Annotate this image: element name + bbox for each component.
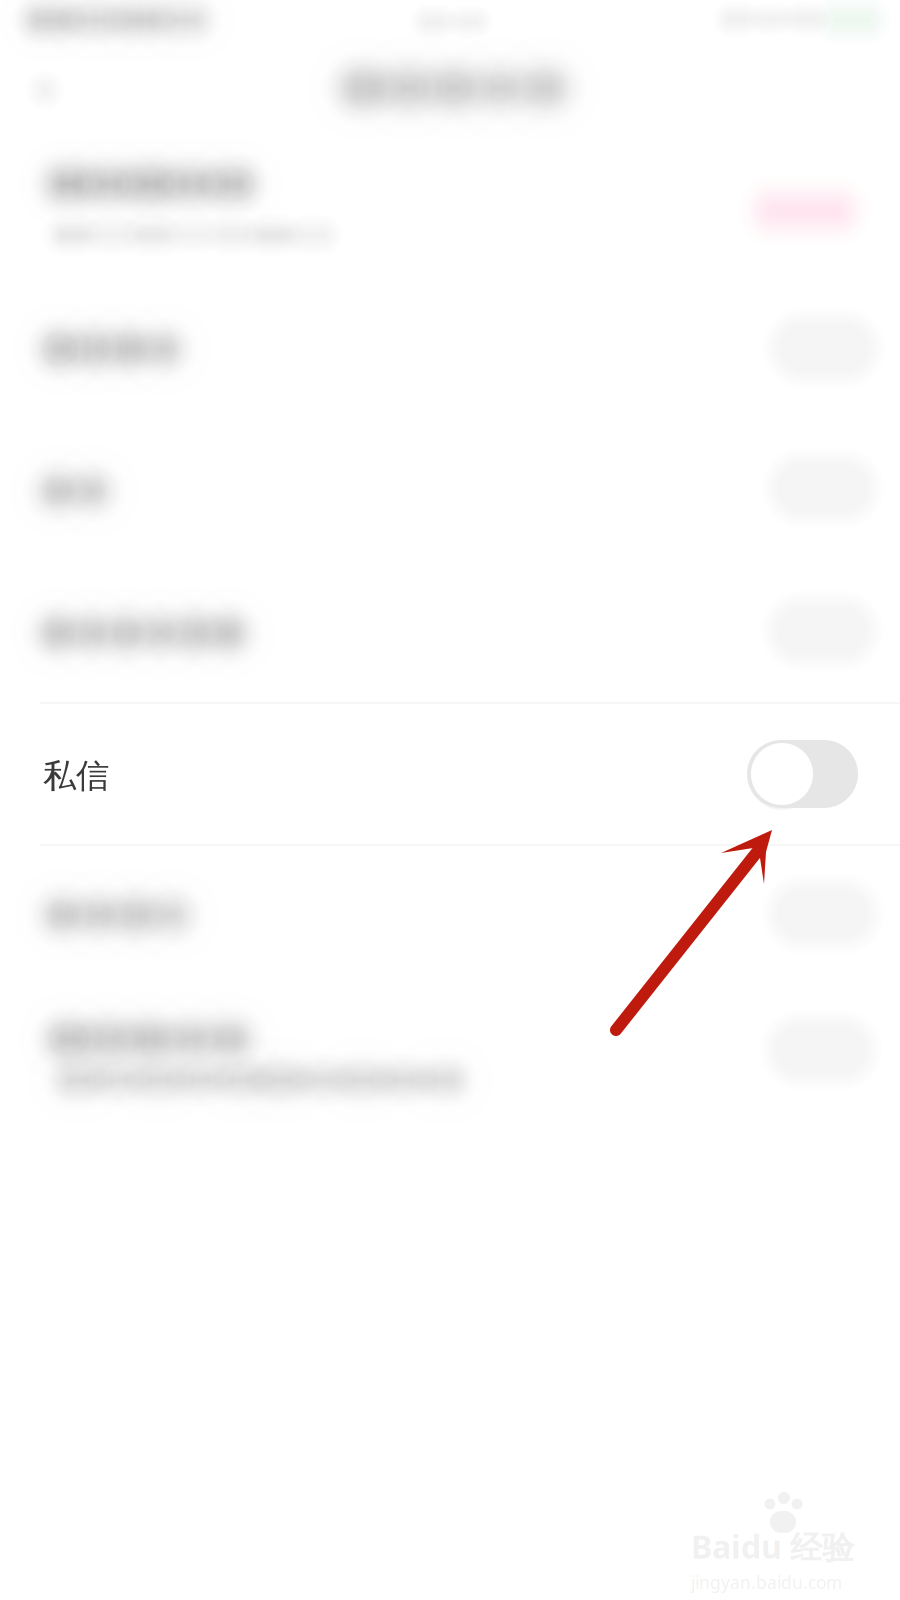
button[interactable]: Settings row 2 [0,278,900,418]
button[interactable]: Settings row 3 [0,420,900,560]
button[interactable]: Settings row 6 [0,986,900,1194]
staticText: jingyan.baidu.com [691,1571,842,1594]
button[interactable]: Settings row 1 [0,136,900,276]
staticText: 私信 [43,755,109,796]
button[interactable]: Settings row 4 [0,562,900,702]
staticText: Baidu 经验 [691,1525,854,1568]
button[interactable]: Settings row 5 [0,846,900,984]
button[interactable]: 私信 [0,702,900,846]
